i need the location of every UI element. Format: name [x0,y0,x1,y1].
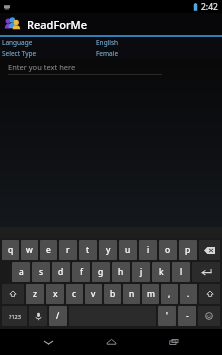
staticText: Language [2,38,33,47]
button[interactable]: e [40,240,57,260]
button[interactable]: i [139,240,157,260]
button[interactable]: j [132,262,150,282]
button[interactable]: Shift [2,284,24,304]
button[interactable]: u [119,240,137,260]
button[interactable]: Select Type [0,48,222,59]
staticText: Select Type [2,49,37,58]
button[interactable]: c [66,284,83,304]
button[interactable]: z [26,284,44,304]
button[interactable]: a [12,262,30,282]
staticText: 2:42 [201,1,218,13]
button[interactable]: . [180,284,197,304]
button[interactable]: Hide keyboard [33,329,63,355]
button[interactable]: m [142,284,159,304]
staticText: j [140,266,143,278]
button[interactable]: y [99,240,117,260]
button[interactable]: , [161,284,178,304]
staticText: u [125,244,131,256]
button[interactable]: l [172,262,190,282]
button[interactable]: Language [0,37,222,48]
button[interactable]: Enter [192,262,220,282]
staticText: e [46,244,51,256]
staticText: b [110,288,116,300]
staticText: / [56,310,60,322]
button[interactable]: Symbols [2,306,27,326]
staticText: ?123 [9,313,21,320]
staticText: ReadForMe [27,17,87,32]
staticText: k [159,266,164,278]
staticText: l [180,266,183,278]
button[interactable]: f [72,262,90,282]
staticText: Female [96,49,119,58]
button[interactable]: s [32,262,50,282]
staticText: m [147,288,155,300]
staticText: d [58,266,64,278]
staticText: n [129,288,135,300]
staticText: . [187,288,190,300]
staticText: z [33,288,37,300]
staticText: x [53,288,58,300]
staticText: s [39,266,44,278]
button[interactable]: - [178,306,196,326]
staticText: i [147,244,150,256]
staticText: g [98,266,104,278]
button[interactable]: o [159,240,177,260]
button[interactable]: ' [158,306,176,326]
button[interactable]: Shift [199,284,220,304]
staticText: c [72,288,77,300]
staticText: a [19,266,24,278]
staticText: r [66,244,70,256]
staticText: Enter you text here [8,62,76,72]
button[interactable]: h [112,262,130,282]
staticText: o [165,244,171,256]
button[interactable]: n [123,284,140,304]
staticText: , [168,288,171,300]
button[interactable]: p [179,240,197,260]
button[interactable]: b [104,284,121,304]
button[interactable]: Recents [159,329,189,355]
staticText: ' [166,310,168,322]
button[interactable]: Go [198,306,220,326]
staticText: w [26,244,33,256]
staticText: English [96,38,119,47]
button[interactable]: Home [96,329,126,355]
button[interactable]: q [2,240,19,260]
button[interactable]: k [152,262,170,282]
button[interactable]: g [92,262,110,282]
button[interactable]: Backspace [199,240,220,260]
button[interactable]: ReadForMe [0,13,222,35]
staticText: h [118,266,124,278]
staticText: p [185,244,191,256]
staticText: v [91,288,96,300]
button[interactable]: t [79,240,97,260]
staticText: f [80,266,83,278]
button[interactable]: / [49,306,67,326]
button[interactable]: r [59,240,77,260]
button[interactable]: Voice input [29,306,47,326]
staticText: q [8,244,14,256]
staticText: - [186,310,189,322]
staticText: y [106,244,111,256]
button[interactable]: w [21,240,38,260]
button[interactable]: Enter you text here [8,62,162,75]
button[interactable]: v [85,284,102,304]
button[interactable]: x [46,284,64,304]
staticText: t [86,244,90,256]
button[interactable]: d [52,262,70,282]
